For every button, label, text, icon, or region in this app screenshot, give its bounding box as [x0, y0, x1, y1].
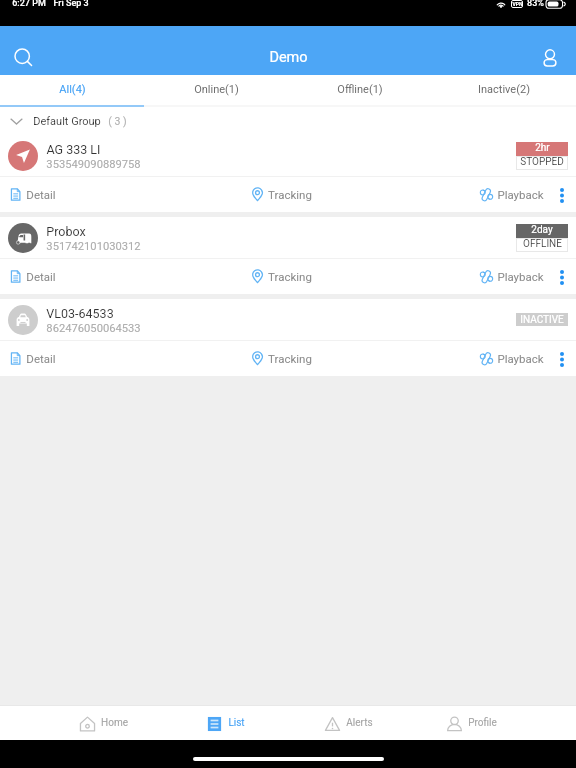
- button[interactable]: VL03-64533: [0, 299, 576, 340]
- staticText: Demo: [269, 49, 308, 66]
- button[interactable]: Detail: [10, 270, 56, 283]
- button[interactable]: Playback: [481, 188, 544, 201]
- staticText: Playback: [497, 270, 544, 283]
- button[interactable]: Default Group: [0, 107, 576, 135]
- button[interactable]: More options: [556, 262, 567, 292]
- button[interactable]: Search: [8, 42, 39, 73]
- staticText: Tracking: [268, 270, 312, 283]
- staticText: Inactive(2): [478, 83, 530, 96]
- staticText: 6:27 PM: [12, 0, 46, 9]
- staticText: 2hr: [535, 142, 550, 154]
- button[interactable]: Playback: [481, 352, 544, 365]
- staticText: Tracking: [268, 188, 312, 201]
- staticText: 353549090889758: [46, 158, 141, 171]
- staticText: Profile: [468, 717, 497, 729]
- button[interactable]: Probox: [0, 217, 576, 258]
- button[interactable]: Home: [43, 706, 165, 740]
- staticText: 351742101030312: [46, 240, 141, 253]
- staticText: All(4): [59, 83, 86, 96]
- staticText: Default Group: [33, 115, 101, 128]
- staticText: Fri Sep 3: [53, 0, 89, 9]
- staticText: INACTIVE: [520, 314, 564, 326]
- staticText: Playback: [497, 352, 544, 365]
- button[interactable]: Detail: [10, 352, 56, 365]
- button[interactable]: Playback: [481, 270, 544, 283]
- staticText: List: [228, 717, 245, 729]
- button[interactable]: Detail: [10, 188, 56, 201]
- button[interactable]: Tracking: [252, 352, 312, 365]
- staticText: VPN: [512, 1, 523, 7]
- staticText: Detail: [26, 352, 56, 365]
- button[interactable]: Alerts: [287, 706, 410, 740]
- button[interactable]: Tracking: [252, 188, 312, 201]
- button[interactable]: More options: [556, 344, 567, 374]
- button[interactable]: Tracking: [252, 270, 312, 283]
- staticText: Detail: [26, 188, 56, 201]
- staticText: Playback: [497, 188, 544, 201]
- staticText: Probox: [46, 224, 86, 239]
- staticText: 83%: [527, 0, 544, 9]
- staticText: AG 333 LI: [46, 142, 101, 157]
- button[interactable]: List: [165, 706, 287, 740]
- staticText: STOPPED: [520, 156, 564, 168]
- button[interactable]: More options: [556, 180, 567, 210]
- staticText: Detail: [26, 270, 56, 283]
- staticText: 2day: [531, 224, 553, 236]
- staticText: ( 3 ): [108, 115, 127, 127]
- staticText: Home: [101, 717, 128, 729]
- staticText: Tracking: [268, 352, 312, 365]
- button[interactable]: Inactive(2): [432, 75, 576, 105]
- staticText: Offline(1): [337, 83, 383, 96]
- button[interactable]: Offline(1): [288, 75, 432, 105]
- button[interactable]: Online(1): [144, 75, 288, 105]
- staticText: VL03-64533: [46, 306, 114, 321]
- staticText: OFFLINE: [523, 238, 562, 250]
- staticText: 862476050064533: [46, 322, 141, 335]
- button[interactable]: AG 333 LI: [0, 135, 576, 176]
- button[interactable]: All(4): [0, 75, 144, 105]
- staticText: Online(1): [194, 83, 239, 96]
- button[interactable]: Account: [534, 42, 565, 73]
- button[interactable]: Profile: [410, 706, 533, 740]
- staticText: Alerts: [346, 717, 373, 729]
